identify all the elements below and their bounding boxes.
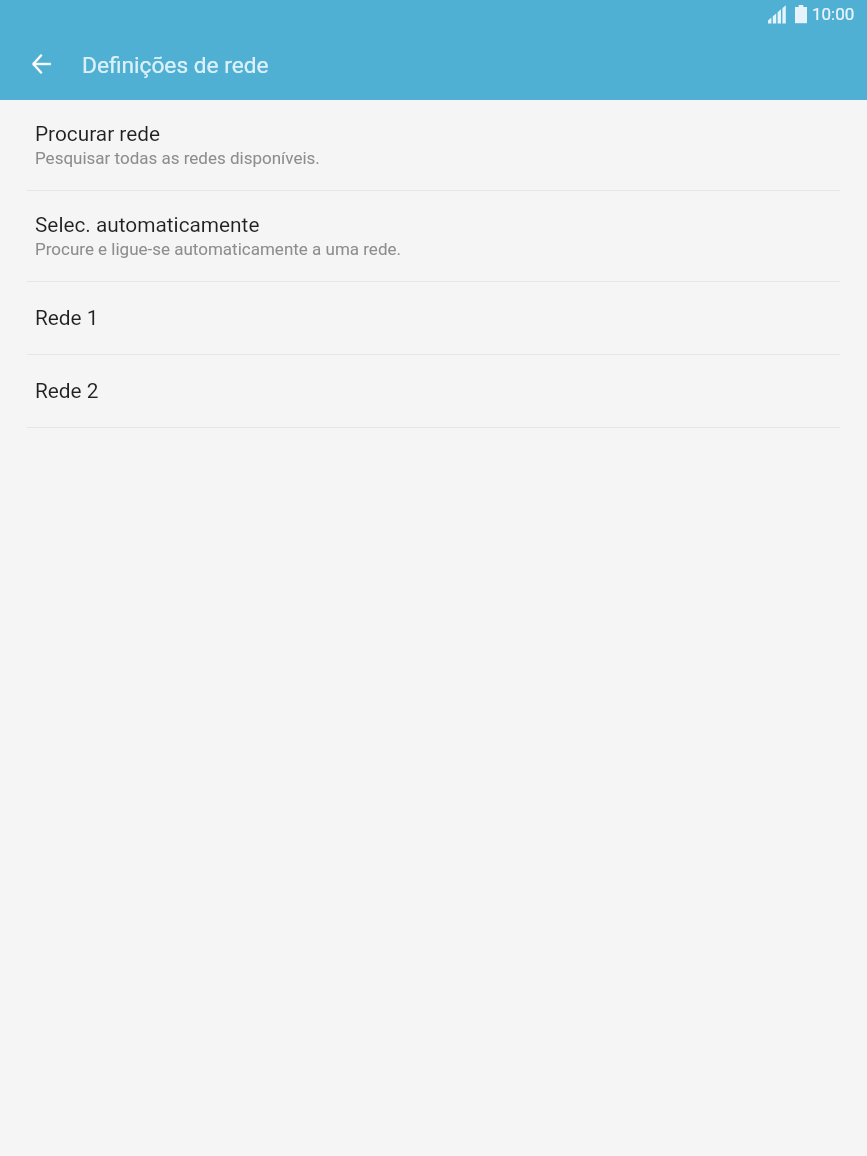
staticText: Definições de rede — [82, 52, 269, 79]
button[interactable]: Rede 1 — [0, 282, 867, 354]
staticText: Rede 2 — [35, 379, 99, 404]
button[interactable]: Procurar rede — [0, 100, 867, 190]
button[interactable]: Rede 2 — [0, 355, 867, 427]
button[interactable]: Selec. automaticamente — [0, 191, 867, 281]
staticText: Selec. automaticamente — [35, 213, 260, 238]
staticText: Procurar rede — [35, 122, 160, 147]
staticText: Pesquisar todas as redes disponíveis. — [35, 148, 320, 168]
staticText: Rede 1 — [35, 306, 99, 331]
staticText: 10:00 — [812, 4, 855, 24]
button[interactable]: Back — [15, 37, 69, 91]
staticText: Procure e ligue-se automaticamente a uma… — [35, 239, 401, 259]
